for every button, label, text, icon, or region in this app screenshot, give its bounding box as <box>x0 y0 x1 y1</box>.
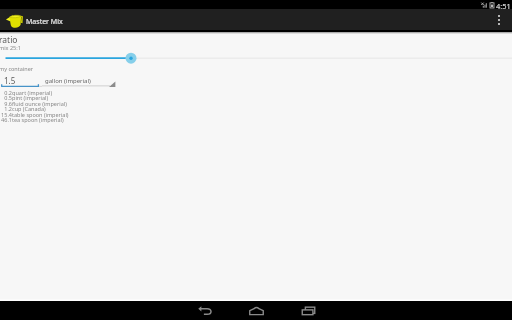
staticText: Master Mix <box>26 17 63 27</box>
staticText: cup (Canada) <box>12 105 46 112</box>
staticText: fluid ounce (imperial) <box>12 100 67 107</box>
staticText: gallon (imperial) <box>45 77 91 85</box>
staticText: tea spoon (imperial) <box>12 116 64 123</box>
staticText: quart (imperial) <box>12 89 53 96</box>
button[interactable]: Back <box>185 301 225 320</box>
staticText: 1.5 <box>4 75 16 86</box>
button[interactable]: Recent apps <box>288 301 328 320</box>
button[interactable]: gallon (imperial) <box>42 73 118 89</box>
staticText: ratio <box>0 34 18 46</box>
staticText: 0.5 <box>0 94 12 101</box>
staticText: my container <box>0 65 34 72</box>
staticText: pint (imperial) <box>12 94 49 101</box>
button[interactable]: 1.5 <box>0 73 44 89</box>
staticText: 46.1 <box>0 116 12 123</box>
button[interactable]: More options <box>490 9 508 31</box>
staticText: 4:51 <box>496 1 511 10</box>
staticText: mix 25:1 <box>0 44 21 51</box>
staticText: table spoon (imperial) <box>12 111 69 118</box>
button[interactable]: Mix ratio slider <box>0 51 512 65</box>
staticText: 1.2 <box>0 105 12 112</box>
staticText: 15.4 <box>0 111 12 118</box>
staticText: 9.6 <box>0 100 12 107</box>
staticText: 0.2 <box>0 89 12 96</box>
button[interactable]: Home <box>236 301 276 320</box>
